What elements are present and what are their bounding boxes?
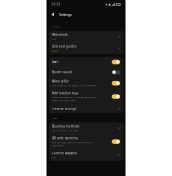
staticText: Mirror selfie [52,79,69,83]
staticText: QR code scanning [52,136,78,140]
staticText: Off [52,37,56,40]
staticText: Level [52,60,58,64]
staticText: Add location tags [52,91,78,95]
staticText: Photos and videos will include the locat… [52,96,96,102]
staticText: Shooting methods [52,125,79,128]
staticText: Watermark [52,33,67,36]
button[interactable]: Shooting methods [49,122,123,134]
staticText: Off [52,156,56,159]
button[interactable]: QR code scanning [49,134,123,149]
button[interactable]: Watermark [49,31,123,42]
button[interactable]: Grid and guides [49,42,123,54]
staticText: Shutter sound [52,70,72,74]
staticText: Camera Assistant [52,151,77,155]
staticText: General [52,25,60,28]
staticText: Tap to capture, More peek [52,129,78,132]
staticText: Settings [59,12,72,17]
button[interactable]: Add location tags [49,89,123,104]
staticText: Grid [52,49,57,52]
staticText: Scan QR codes with the main camera in Ph… [52,141,93,147]
button[interactable]: Preserve settings [49,104,123,113]
staticText: Preserve settings [52,107,76,110]
button[interactable]: Shutter sound [49,67,123,77]
button[interactable]: Camera Assistant [49,149,123,161]
staticText: Save selfies as they appear in the viewf… [52,84,96,87]
staticText: 09:58 [51,3,60,6]
staticText: Grid and guides [52,45,76,48]
button[interactable]: Mirror selfie [49,77,123,89]
button[interactable]: Level [49,57,123,67]
staticText: More [52,117,57,120]
button[interactable]: Back [50,11,57,17]
